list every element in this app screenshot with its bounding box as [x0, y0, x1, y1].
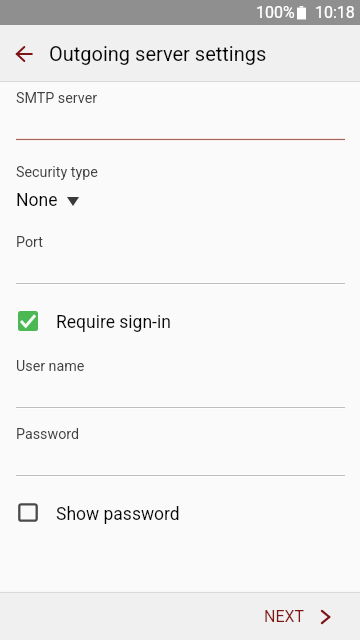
staticText: Show password: [56, 504, 180, 525]
staticText: NEXT: [264, 607, 305, 626]
staticText: 10:18: [315, 3, 355, 22]
staticText: Outgoing server settings: [49, 42, 267, 65]
staticText: None: [16, 190, 58, 211]
staticText: User name: [16, 358, 85, 375]
staticText: Password: [16, 426, 80, 443]
button[interactable]: None: [16, 188, 79, 212]
staticText: Require sign-in: [56, 312, 171, 333]
button[interactable]: Back: [8, 38, 40, 70]
button[interactable]: NEXT: [244, 593, 360, 640]
button[interactable]: Show password: [0, 491, 360, 537]
staticText: Security type: [16, 164, 98, 181]
staticText: SMTP server: [16, 90, 98, 107]
staticText: 100%: [256, 3, 295, 22]
button[interactable]: Require sign-in: [0, 299, 360, 345]
staticText: Port: [16, 234, 43, 251]
